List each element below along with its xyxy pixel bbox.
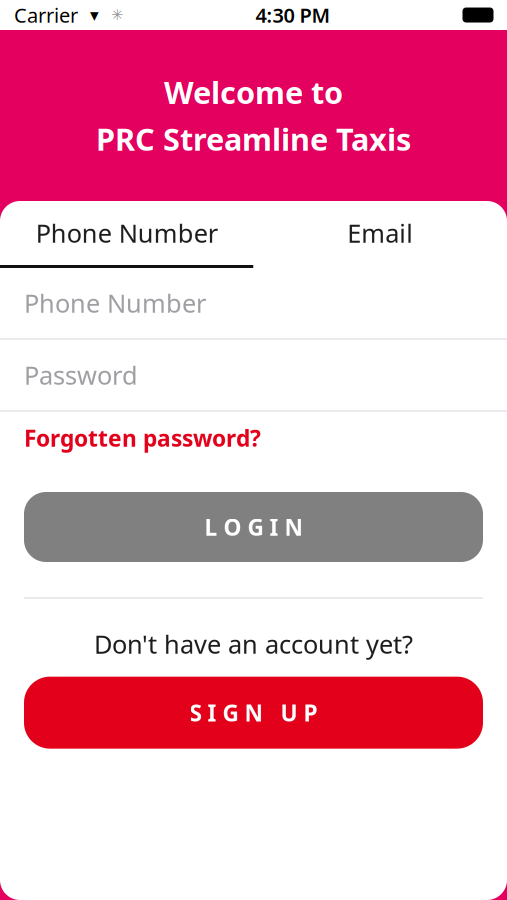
staticText: ▾ bbox=[78, 5, 111, 25]
button[interactable]: Forgotten password? bbox=[0, 412, 507, 464]
staticText: Forgotten password? bbox=[24, 423, 261, 453]
button[interactable]: Phone Number bbox=[0, 201, 253, 268]
button[interactable]: Email bbox=[253, 201, 507, 268]
staticText: Phone Number bbox=[36, 216, 218, 250]
button[interactable]: S I G N U P bbox=[24, 677, 483, 749]
staticText: Welcome to bbox=[164, 72, 343, 112]
staticText: PRC Streamline Taxis bbox=[96, 118, 411, 159]
staticText: S I G N U P bbox=[189, 698, 317, 728]
staticText: 4:30 PM bbox=[255, 2, 330, 28]
button[interactable]: L O G I N bbox=[24, 492, 483, 562]
staticText: Phone Number bbox=[24, 286, 206, 320]
staticText: Carrier bbox=[14, 2, 78, 28]
staticText: Email bbox=[347, 216, 413, 250]
staticText: Don't have an account yet? bbox=[94, 627, 413, 661]
staticText: L O G I N bbox=[204, 512, 302, 542]
staticText: ✳ bbox=[111, 7, 123, 23]
staticText: Password bbox=[24, 358, 138, 392]
